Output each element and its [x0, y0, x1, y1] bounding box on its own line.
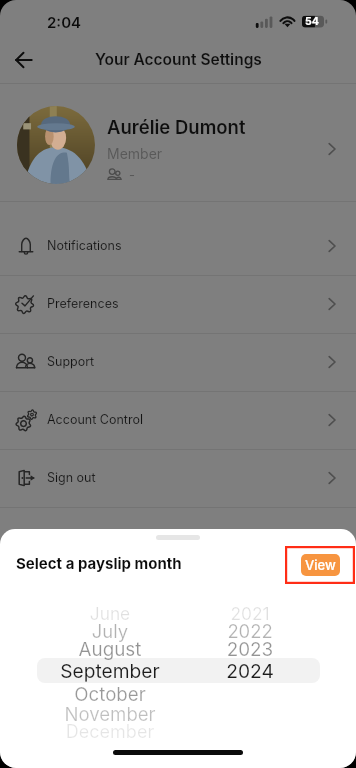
button[interactable]: Aurélie Dumont [0, 84, 356, 201]
staticText: 2:04 [47, 13, 82, 31]
button[interactable]: Sign out [0, 449, 356, 507]
staticText: July [20, 620, 200, 642]
button[interactable]: Back [6, 42, 42, 78]
button[interactable]: View [285, 546, 355, 584]
staticText: Preferences [47, 296, 119, 311]
staticText: November [20, 703, 200, 726]
staticText: Account Control [47, 412, 143, 427]
staticText: 2024 [190, 659, 310, 682]
staticText: June [20, 603, 200, 624]
button[interactable]: Notifications [0, 217, 356, 275]
staticText: - [129, 167, 135, 183]
staticText: 2022 [190, 620, 310, 642]
staticText: Sign out [47, 470, 96, 485]
staticText: Aurélie Dumont [107, 116, 246, 138]
staticText: 2023 [190, 638, 310, 661]
staticText: Notifications [47, 238, 122, 253]
staticText: Support [47, 354, 95, 369]
staticText: 2021 [190, 603, 310, 624]
staticText: Your Account Settings [95, 50, 262, 69]
staticText: September [20, 659, 200, 682]
button[interactable]: Support [0, 333, 356, 391]
staticText: 54 [305, 15, 319, 28]
staticText: View [305, 557, 336, 573]
button[interactable]: Preferences [0, 275, 356, 333]
staticText: August [20, 638, 200, 661]
staticText: December [20, 721, 200, 743]
staticText: Member [107, 145, 163, 162]
button[interactable]: Account Control [0, 391, 356, 449]
staticText: October [20, 683, 200, 706]
staticText: Select a payslip month [16, 554, 182, 572]
